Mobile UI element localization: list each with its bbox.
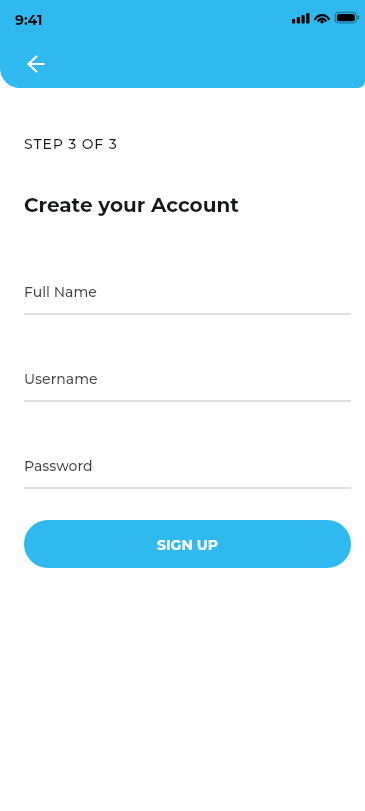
staticText: Full Name bbox=[24, 283, 97, 300]
button[interactable]: Username bbox=[24, 362, 351, 402]
staticText: Create your Account bbox=[24, 193, 239, 217]
staticText: Password bbox=[24, 457, 93, 474]
button[interactable]: Password bbox=[24, 449, 351, 489]
staticText: Username bbox=[24, 370, 98, 387]
button[interactable]: Back bbox=[20, 48, 52, 80]
button[interactable]: Full Name bbox=[24, 275, 351, 315]
staticText: SIGN UP bbox=[157, 536, 218, 553]
staticText: 9:41 bbox=[15, 11, 43, 28]
staticText: STEP 3 OF 3 bbox=[24, 135, 118, 152]
button[interactable]: SIGN UP bbox=[24, 520, 351, 568]
